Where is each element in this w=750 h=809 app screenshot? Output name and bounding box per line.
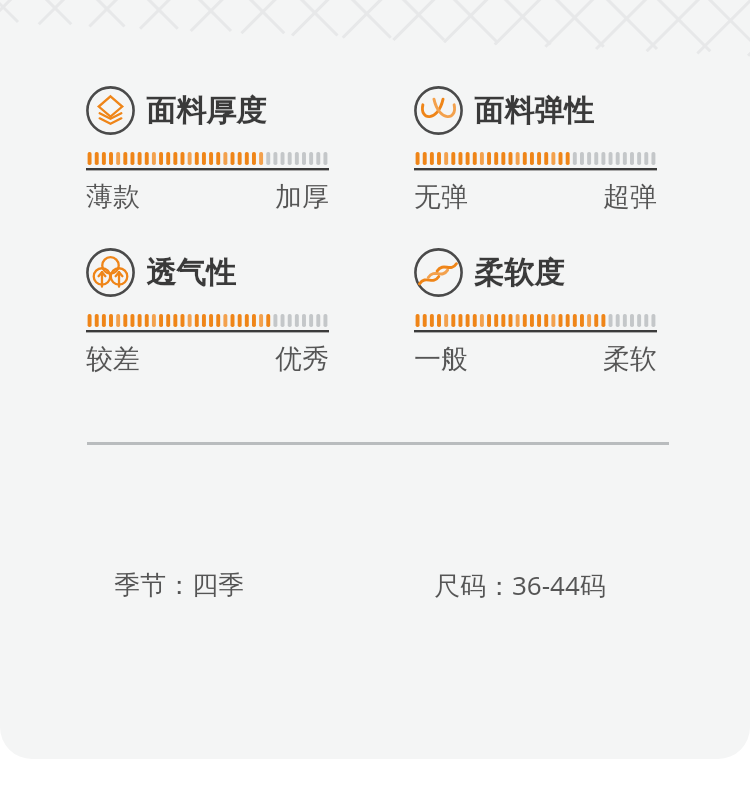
button[interactable]: 面料弹性 — [414, 86, 657, 214]
other: 柔软度 — [414, 248, 463, 297]
staticText: 超弹 — [603, 180, 657, 214]
button[interactable]: 透气性 — [86, 248, 329, 376]
other: 面料弹性 — [414, 86, 463, 135]
other: 面料厚度 — [86, 86, 135, 135]
staticText: 尺码：36-44码 — [434, 567, 606, 603]
button[interactable]: 柔软度 — [414, 248, 657, 376]
staticText: 面料弹性 — [474, 92, 594, 130]
staticText: 面料厚度 — [146, 92, 266, 130]
button[interactable]: 面料厚度 — [86, 86, 329, 214]
staticText: 季节：四季 — [114, 569, 244, 602]
button[interactable]: 季节：四季 — [114, 569, 244, 602]
button[interactable]: 尺码：36-44码 — [434, 567, 606, 603]
staticText: 透气性 — [146, 254, 236, 292]
staticText: 优秀 — [275, 342, 329, 376]
staticText: 柔软 — [603, 342, 657, 376]
staticText: 无弹 — [414, 180, 468, 214]
staticText: 柔软度 — [474, 254, 564, 292]
staticText: 一般 — [414, 342, 468, 376]
other: 透气性 — [86, 248, 135, 297]
staticText: 较差 — [86, 342, 140, 376]
staticText: 薄款 — [86, 180, 140, 214]
staticText: 加厚 — [275, 180, 329, 214]
